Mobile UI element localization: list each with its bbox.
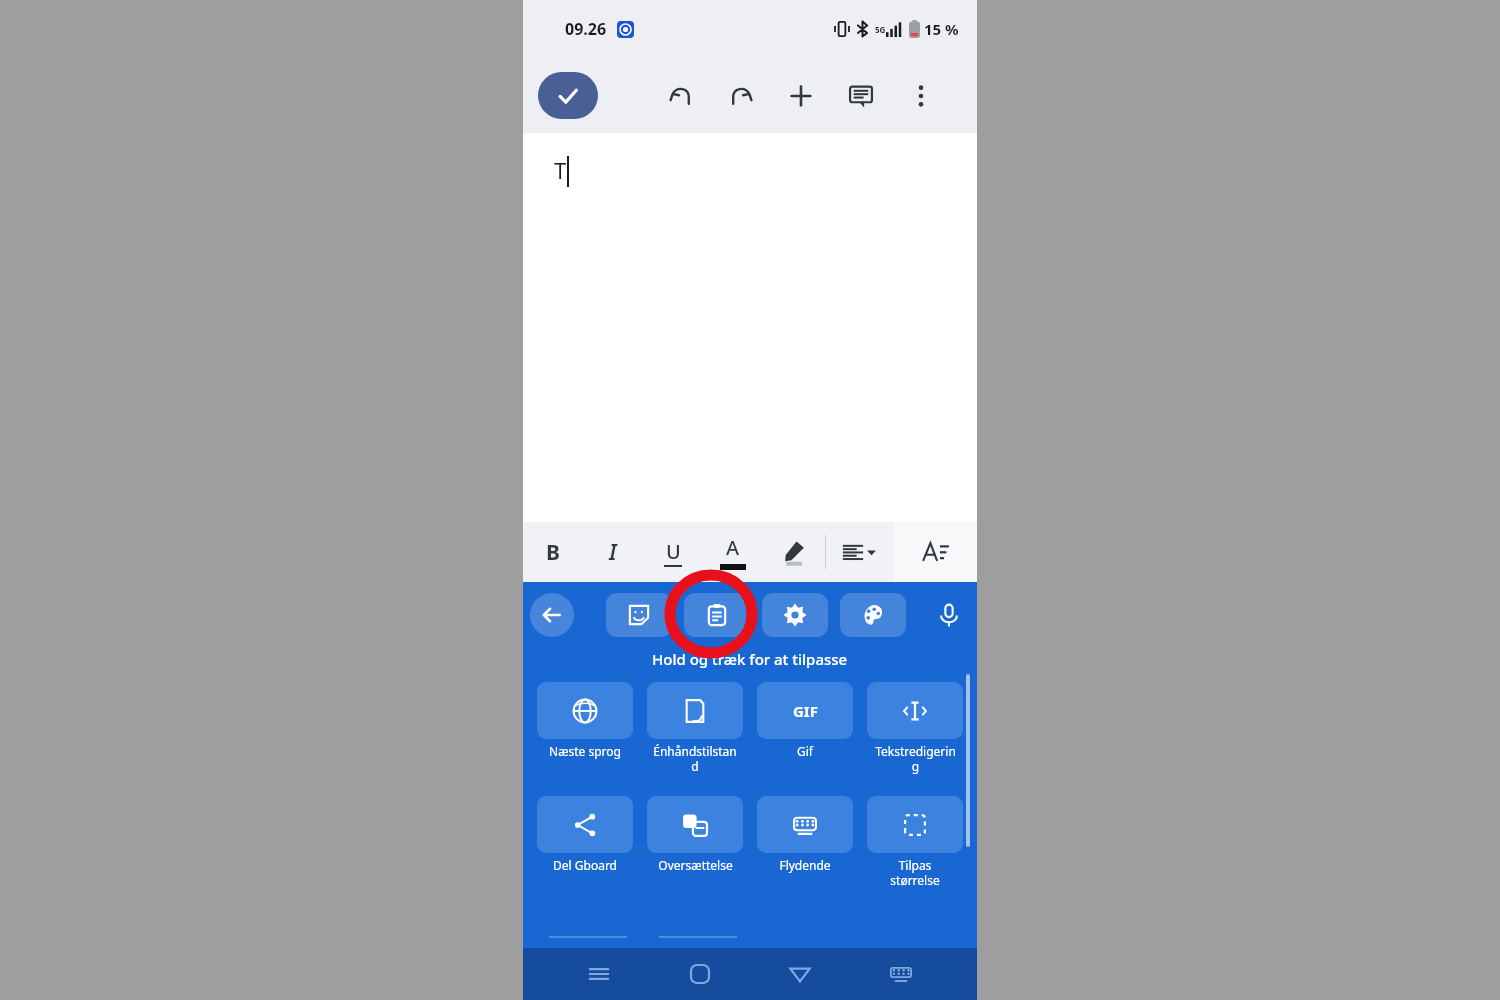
button[interactable]: GIF xyxy=(757,682,853,759)
button[interactable]: Add xyxy=(777,72,825,120)
button[interactable]: Del Gboard xyxy=(537,796,633,873)
staticText: Del Gboard xyxy=(553,857,617,873)
staticText: Tilpas størrelse xyxy=(890,857,940,888)
button[interactable]: Flydende xyxy=(757,796,853,873)
staticText: Gif xyxy=(797,743,813,759)
button[interactable]: Énhåndstilstan d xyxy=(647,682,743,774)
button[interactable]: Hide keyboard xyxy=(877,950,925,998)
button[interactable]: Italic xyxy=(583,522,643,582)
button[interactable]: Stickers xyxy=(606,593,672,637)
staticText: Tekstredigerin g xyxy=(875,743,956,774)
button[interactable]: Text style xyxy=(894,522,977,582)
button[interactable]: Tekstredigerin g xyxy=(867,682,963,774)
staticText: 09.26 xyxy=(565,18,607,40)
staticText: A xyxy=(726,534,740,561)
button[interactable]: Clipboard xyxy=(684,593,750,637)
button[interactable]: Settings xyxy=(762,593,828,637)
button[interactable]: Home xyxy=(676,950,724,998)
button[interactable]: Text colour xyxy=(703,522,763,582)
button[interactable]: Alignment xyxy=(826,522,892,582)
button[interactable]: Voice input xyxy=(927,593,971,637)
staticText: Énhåndstilstan d xyxy=(653,743,737,774)
staticText: 15 % xyxy=(924,19,959,39)
button[interactable]: Highlight xyxy=(763,522,825,582)
button[interactable]: Back xyxy=(530,593,574,637)
button[interactable]: Undo xyxy=(657,72,705,120)
button[interactable]: Comment xyxy=(837,72,885,120)
staticText: U xyxy=(666,538,681,565)
staticText: Flydende xyxy=(779,857,831,873)
staticText: GIF xyxy=(793,701,818,721)
staticText: B xyxy=(546,538,560,567)
button[interactable]: Theme xyxy=(840,593,906,637)
staticText: Oversættelse xyxy=(658,857,733,873)
button[interactable]: Næste sprog xyxy=(537,682,633,759)
staticText: I xyxy=(609,538,617,567)
button[interactable]: Oversættelse xyxy=(647,796,743,873)
staticText: Næste sprog xyxy=(549,743,621,759)
button[interactable]: Recents xyxy=(575,950,623,998)
button[interactable]: Tilpas størrelse xyxy=(867,796,963,888)
button[interactable]: Bold xyxy=(523,522,583,582)
button[interactable]: Underline xyxy=(643,522,703,582)
button[interactable]: Redo xyxy=(717,72,765,120)
button[interactable]: Back xyxy=(776,950,824,998)
button[interactable]: More options xyxy=(897,72,945,120)
staticText: 5G xyxy=(875,24,886,35)
staticText: Hold og træk for at tilpasse xyxy=(652,649,848,669)
button[interactable]: Done xyxy=(538,72,598,119)
staticText: T xyxy=(554,155,567,185)
